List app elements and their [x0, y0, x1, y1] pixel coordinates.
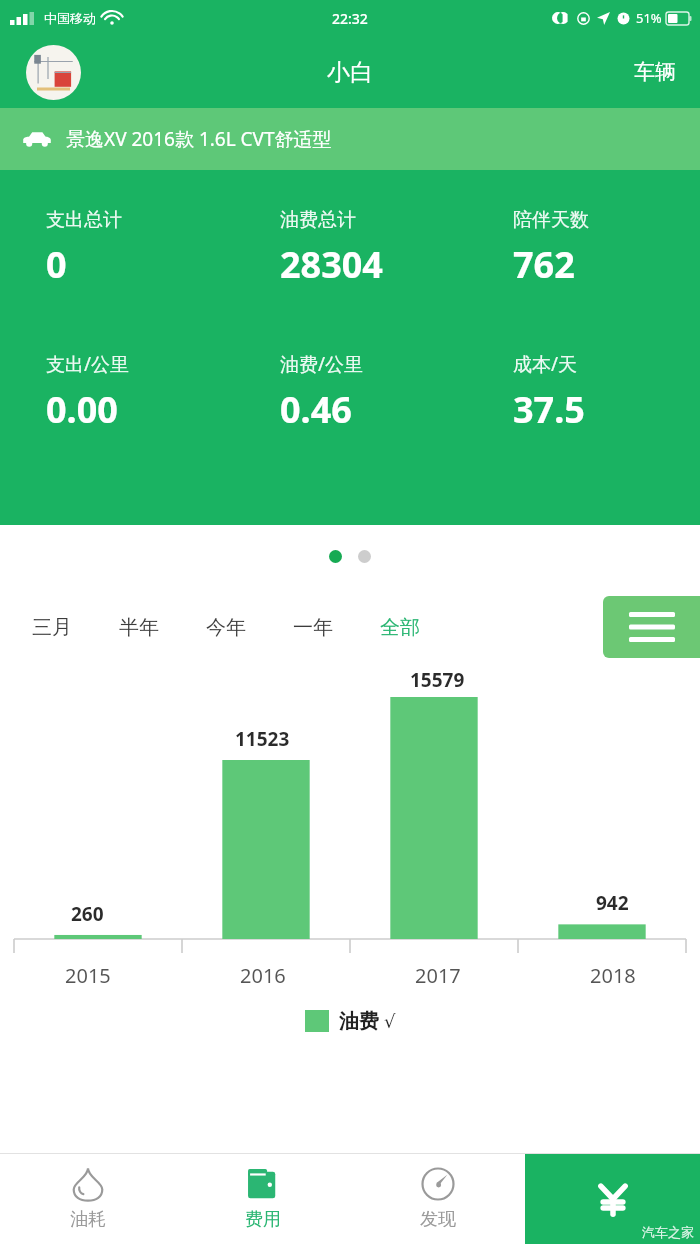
staticText: 成本/天 — [513, 351, 578, 377]
staticText: √ — [384, 1011, 396, 1032]
staticText: 37.5 — [513, 385, 585, 434]
staticText: 费用 — [245, 1208, 281, 1231]
staticText: 全部 — [380, 615, 420, 640]
staticText: 半年 — [119, 615, 159, 640]
staticText: 22:32 — [332, 9, 368, 28]
button[interactable]: 全部 — [380, 615, 467, 640]
button[interactable]: Profile — [26, 45, 81, 100]
button[interactable]: 景逸XV 2016款 1.6L CVT舒适型 — [0, 108, 700, 170]
staticText: 陪伴天数 — [513, 208, 589, 232]
button[interactable]: 一年 — [293, 615, 380, 640]
button[interactable]: Add expense — [525, 1154, 700, 1244]
staticText: 2017 — [415, 962, 461, 989]
staticText: 2016 — [240, 962, 286, 989]
staticText: 2015 — [65, 962, 111, 989]
staticText: 942 — [596, 890, 629, 916]
button[interactable]: 半年 — [119, 615, 206, 640]
staticText: 油费/公里 — [280, 351, 364, 377]
staticText: 景逸XV 2016款 1.6L CVT舒适型 — [66, 126, 332, 152]
staticText: 15579 — [410, 667, 465, 689]
staticText: 今年 — [206, 615, 246, 640]
staticText: 0.00 — [46, 385, 118, 434]
button[interactable]: 油耗 — [0, 1154, 175, 1244]
staticText: 28304 — [280, 240, 383, 289]
staticText: 0 — [46, 240, 67, 289]
staticText: 一年 — [293, 615, 333, 640]
staticText: 11523 — [235, 726, 290, 752]
staticText: 2018 — [590, 962, 636, 989]
staticText: 支出总计 — [46, 208, 122, 232]
staticText: 汽车之家 — [642, 1224, 694, 1240]
button[interactable]: 费用 — [175, 1154, 350, 1244]
button[interactable]: 发现 — [350, 1154, 525, 1244]
staticText: 车辆 — [634, 59, 676, 85]
staticText: 中国移动 — [44, 10, 96, 26]
staticText: 油费 — [339, 1009, 379, 1034]
staticText: 油耗 — [70, 1208, 106, 1231]
button[interactable]: Menu — [603, 596, 700, 658]
staticText: 51% — [636, 9, 662, 27]
staticText: 260 — [71, 901, 104, 927]
staticText: 小白 — [327, 58, 373, 87]
staticText: 三月 — [32, 615, 72, 640]
staticText: 0.46 — [280, 385, 352, 434]
staticText: 发现 — [420, 1208, 456, 1231]
button[interactable]: 三月 — [32, 615, 119, 640]
button[interactable]: 今年 — [206, 615, 293, 640]
staticText: 油费总计 — [280, 208, 356, 232]
staticText: 支出/公里 — [46, 351, 130, 377]
staticText: 762 — [513, 240, 575, 289]
button[interactable]: 车辆 — [610, 49, 700, 95]
